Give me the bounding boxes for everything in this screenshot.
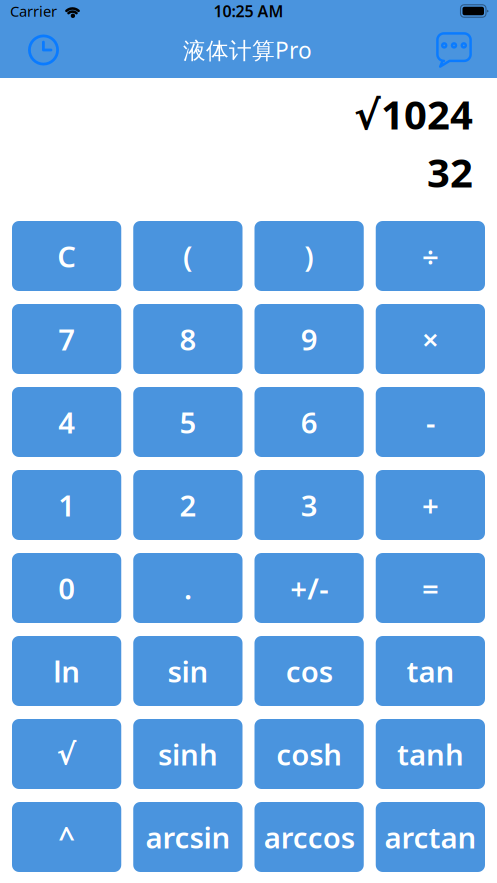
staticText: ÷: [422, 236, 439, 275]
button[interactable]: √: [12, 719, 121, 789]
button[interactable]: 1: [12, 470, 121, 540]
button[interactable]: arccos: [254, 802, 364, 872]
staticText: (: [183, 236, 193, 275]
staticText: .: [184, 568, 192, 607]
staticText: 8: [179, 319, 196, 358]
button[interactable]: sinh: [133, 719, 242, 789]
staticText: ln: [53, 651, 80, 690]
staticText: 0: [58, 568, 75, 607]
staticText: ×: [422, 319, 439, 358]
staticText: 7: [58, 319, 75, 358]
staticText: √1024: [354, 87, 473, 140]
button[interactable]: ÷: [376, 221, 485, 291]
button[interactable]: tanh: [376, 719, 485, 789]
button[interactable]: 8: [133, 304, 242, 374]
staticText: 2: [179, 485, 196, 524]
button[interactable]: 3: [254, 470, 364, 540]
staticText: 5: [179, 402, 196, 441]
staticText: cos: [286, 651, 333, 690]
button[interactable]: 7: [12, 304, 121, 374]
staticText: C: [57, 236, 76, 275]
button[interactable]: Messages: [436, 32, 472, 68]
staticText: tan: [406, 651, 454, 690]
button[interactable]: arcsin: [133, 802, 242, 872]
staticText: ^: [58, 817, 75, 856]
staticText: ): [304, 236, 314, 275]
button[interactable]: .: [133, 553, 242, 623]
staticText: 3: [301, 485, 318, 524]
button[interactable]: cos: [254, 636, 364, 706]
button[interactable]: 6: [254, 387, 364, 457]
button[interactable]: ^: [12, 802, 121, 872]
staticText: -: [426, 402, 435, 441]
staticText: 32: [427, 145, 473, 198]
staticText: sinh: [158, 734, 218, 773]
staticText: cosh: [276, 734, 342, 773]
staticText: arcsin: [145, 817, 230, 856]
button[interactable]: ln: [12, 636, 121, 706]
staticText: 1: [58, 485, 75, 524]
button[interactable]: sin: [133, 636, 242, 706]
staticText: Carrier: [10, 1, 57, 21]
button[interactable]: +/-: [254, 553, 364, 623]
staticText: +/-: [290, 568, 328, 607]
button[interactable]: 2: [133, 470, 242, 540]
staticText: 液体计算Pro: [183, 35, 312, 65]
button[interactable]: =: [376, 553, 485, 623]
staticText: 9: [301, 319, 318, 358]
button[interactable]: cosh: [254, 719, 364, 789]
staticText: arctan: [384, 817, 476, 856]
staticText: 6: [301, 402, 318, 441]
button[interactable]: 4: [12, 387, 121, 457]
button[interactable]: ): [254, 221, 364, 291]
staticText: tanh: [397, 734, 464, 773]
staticText: 4: [58, 402, 75, 441]
button[interactable]: ×: [376, 304, 485, 374]
button[interactable]: arctan: [376, 802, 485, 872]
button[interactable]: (: [133, 221, 242, 291]
button[interactable]: History: [28, 34, 59, 65]
staticText: sin: [167, 651, 208, 690]
staticText: arccos: [264, 817, 355, 856]
button[interactable]: 5: [133, 387, 242, 457]
staticText: =: [422, 568, 439, 607]
button[interactable]: +: [376, 470, 485, 540]
staticText: √: [57, 737, 77, 771]
button[interactable]: 0: [12, 553, 121, 623]
staticText: +: [422, 485, 439, 524]
staticText: 10:25 AM: [213, 0, 283, 22]
button[interactable]: tan: [376, 636, 485, 706]
button[interactable]: C: [12, 221, 121, 291]
button[interactable]: -: [376, 387, 485, 457]
button[interactable]: 9: [254, 304, 364, 374]
